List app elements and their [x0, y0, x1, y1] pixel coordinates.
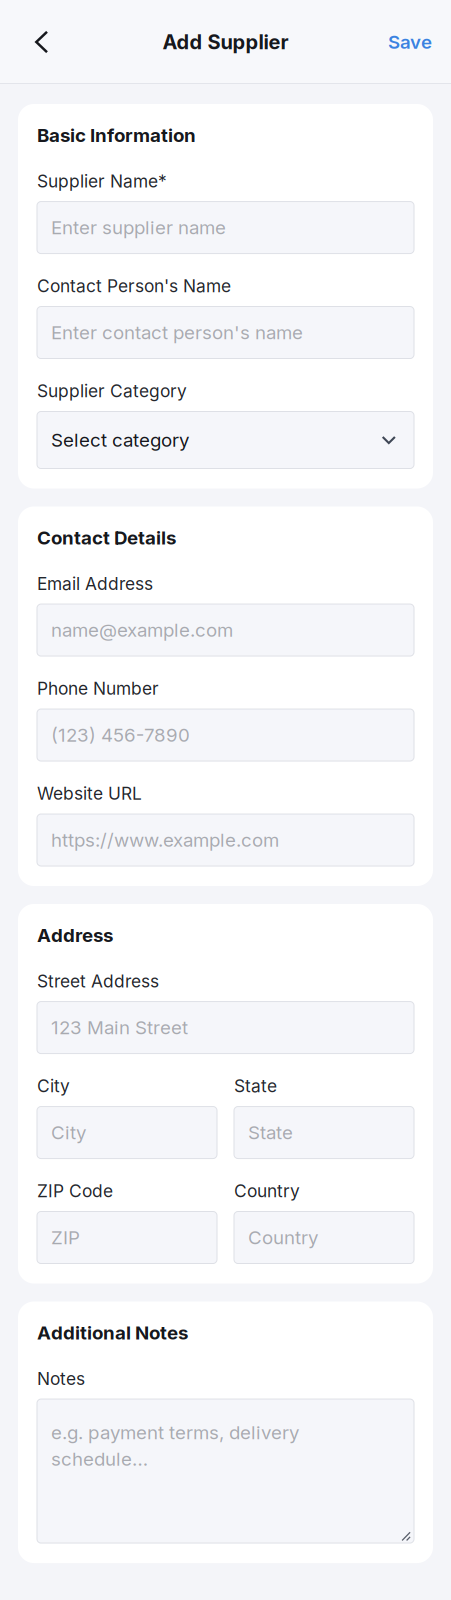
staticText: Contact Person's Name [37, 276, 231, 297]
staticText: State [248, 1121, 293, 1144]
staticText: name@example.com [51, 619, 233, 641]
staticText: Supplier Name* [37, 171, 167, 192]
staticText: City [51, 1121, 86, 1144]
button[interactable]: Back [4, 14, 66, 69]
staticText: Website URL [37, 783, 142, 804]
button[interactable]: name@example.com [37, 604, 414, 656]
staticText: Notes [37, 1368, 85, 1389]
staticText: State [234, 1076, 277, 1097]
staticText: https://www.example.com [51, 829, 279, 851]
button[interactable]: e.g. payment terms, delivery [37, 1399, 414, 1543]
button[interactable]: City [37, 1106, 217, 1158]
staticText: Select category [51, 429, 189, 451]
staticText: Basic Information [37, 124, 196, 147]
staticText: Enter supplier name [51, 216, 226, 239]
staticText: ZIP Code [37, 1180, 113, 1201]
button[interactable]: ZIP [37, 1211, 217, 1263]
staticText: Enter contact person's name [51, 321, 303, 344]
staticText: Street Address [37, 971, 159, 992]
staticText: Supplier Category [37, 380, 187, 401]
button[interactable]: Country [234, 1211, 414, 1263]
staticText: Contact Details [37, 526, 176, 549]
staticText: City [37, 1076, 70, 1097]
button[interactable]: (123) 456-7890 [37, 709, 414, 761]
staticText: Address [37, 924, 113, 947]
staticText: Country [234, 1180, 300, 1201]
button[interactable]: 123 Main Street [37, 1002, 414, 1054]
staticText: schedule… [51, 1448, 148, 1470]
staticText: Country [248, 1226, 318, 1249]
staticText: e.g. payment terms, delivery [51, 1421, 299, 1444]
staticText: 123 Main Street [51, 1016, 188, 1039]
button[interactable]: Save [370, 15, 447, 69]
staticText: Add Supplier [162, 30, 288, 54]
button[interactable]: Select category [37, 411, 414, 468]
button[interactable]: Enter contact person's name [37, 306, 414, 358]
button[interactable]: https://www.example.com [37, 814, 414, 866]
staticText: Save [388, 31, 432, 53]
button[interactable]: Enter supplier name [37, 202, 414, 254]
staticText: ZIP [51, 1226, 80, 1249]
staticText: Additional Notes [37, 1321, 188, 1344]
button[interactable]: State [234, 1106, 414, 1158]
staticText: Email Address [37, 573, 153, 594]
staticText: Phone Number [37, 678, 159, 699]
staticText: (123) 456-7890 [51, 724, 190, 746]
